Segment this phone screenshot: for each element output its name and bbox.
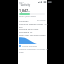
staticText: Resting heart rate averaged 72 bpm over … bbox=[19, 28, 48, 40]
staticText: Activity bbox=[21, 3, 31, 7]
staticText: steps bbox=[24, 9, 31, 12]
staticText: 9:41 bbox=[19, 0, 24, 3]
staticText: Distance walked today 2.4 km bbox=[19, 23, 48, 29]
staticText: 312 kcal bbox=[37, 19, 46, 22]
staticText: Calories bbox=[19, 19, 29, 22]
staticText: Weekly summary is ready to view bbox=[19, 48, 48, 54]
staticText: Goal 4,500 steps bbox=[19, 15, 36, 18]
button[interactable]: Calories bbox=[19, 19, 46, 22]
staticText: Active minutes bbox=[22, 45, 38, 48]
staticText: 1,847 bbox=[19, 8, 29, 13]
button[interactable]: Navigate up bbox=[18, 2, 21, 5]
